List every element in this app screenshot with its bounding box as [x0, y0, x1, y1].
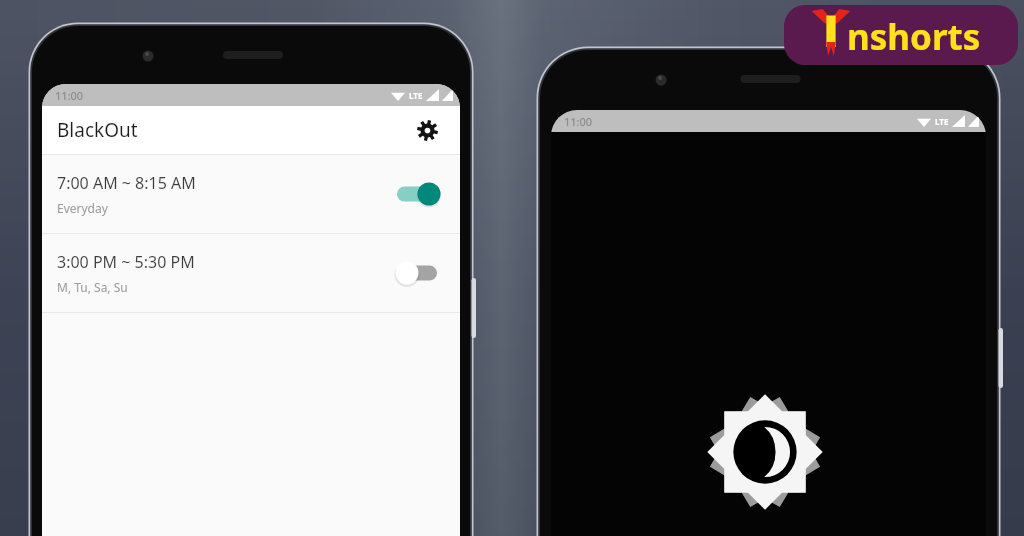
button[interactable]: Inshorts: [784, 5, 1018, 65]
staticText: 11:00: [564, 114, 593, 129]
staticText: LTE: [409, 90, 423, 101]
staticText: nshorts: [847, 13, 981, 61]
staticText: 7:00 AM ~ 8:15 AM: [57, 172, 196, 194]
button[interactable]: 3:00 PM ~ 5:30 PM: [42, 234, 460, 312]
staticText: LTE: [935, 116, 949, 127]
button[interactable]: Night mode: [703, 390, 827, 514]
staticText: M, Tu, Sa, Su: [57, 279, 128, 295]
button[interactable]: Disabled: [395, 256, 445, 290]
button[interactable]: 7:00 AM ~ 8:15 AM: [42, 155, 460, 233]
staticText: 3:00 PM ~ 5:30 PM: [57, 251, 195, 273]
staticText: 11:00: [55, 88, 84, 103]
staticText: BlackOut: [57, 117, 138, 143]
staticText: Everyday: [57, 200, 108, 216]
button[interactable]: Settings: [411, 114, 443, 146]
button[interactable]: Enabled: [395, 177, 445, 211]
